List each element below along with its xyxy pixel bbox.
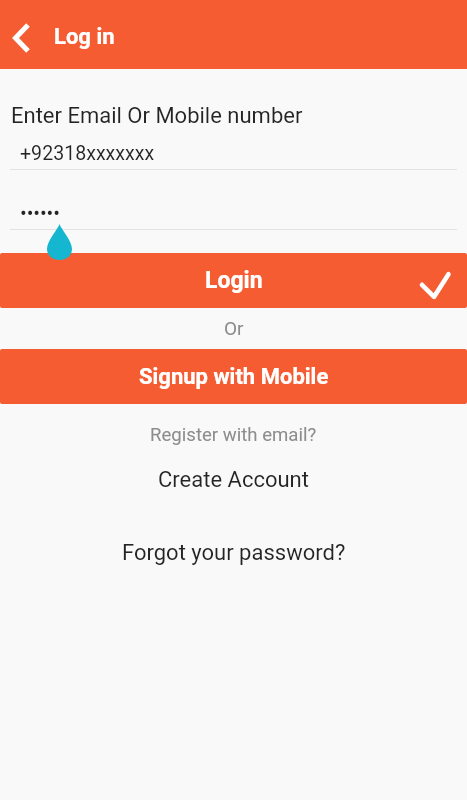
staticText: Or	[224, 317, 244, 339]
button[interactable]: Forgot your password?	[0, 536, 467, 570]
staticText: +92318xxxxxxx	[20, 142, 155, 165]
staticText: Create Account	[158, 467, 309, 493]
staticText: Login	[205, 267, 263, 294]
staticText: Enter Email Or Mobile number	[11, 103, 303, 129]
button[interactable]: Signup with Mobile	[0, 349, 467, 404]
staticText: Signup with Mobile	[139, 364, 329, 390]
staticText: ••••••	[20, 201, 60, 224]
button[interactable]: Create Account	[0, 463, 467, 497]
staticText: Forgot your password?	[122, 540, 346, 566]
staticText: Register with email?	[150, 424, 317, 446]
staticText: Log in	[54, 24, 115, 50]
other: Confirm	[418, 270, 452, 301]
button[interactable]: Login	[0, 253, 467, 308]
button[interactable]: Back	[0, 0, 41, 69]
